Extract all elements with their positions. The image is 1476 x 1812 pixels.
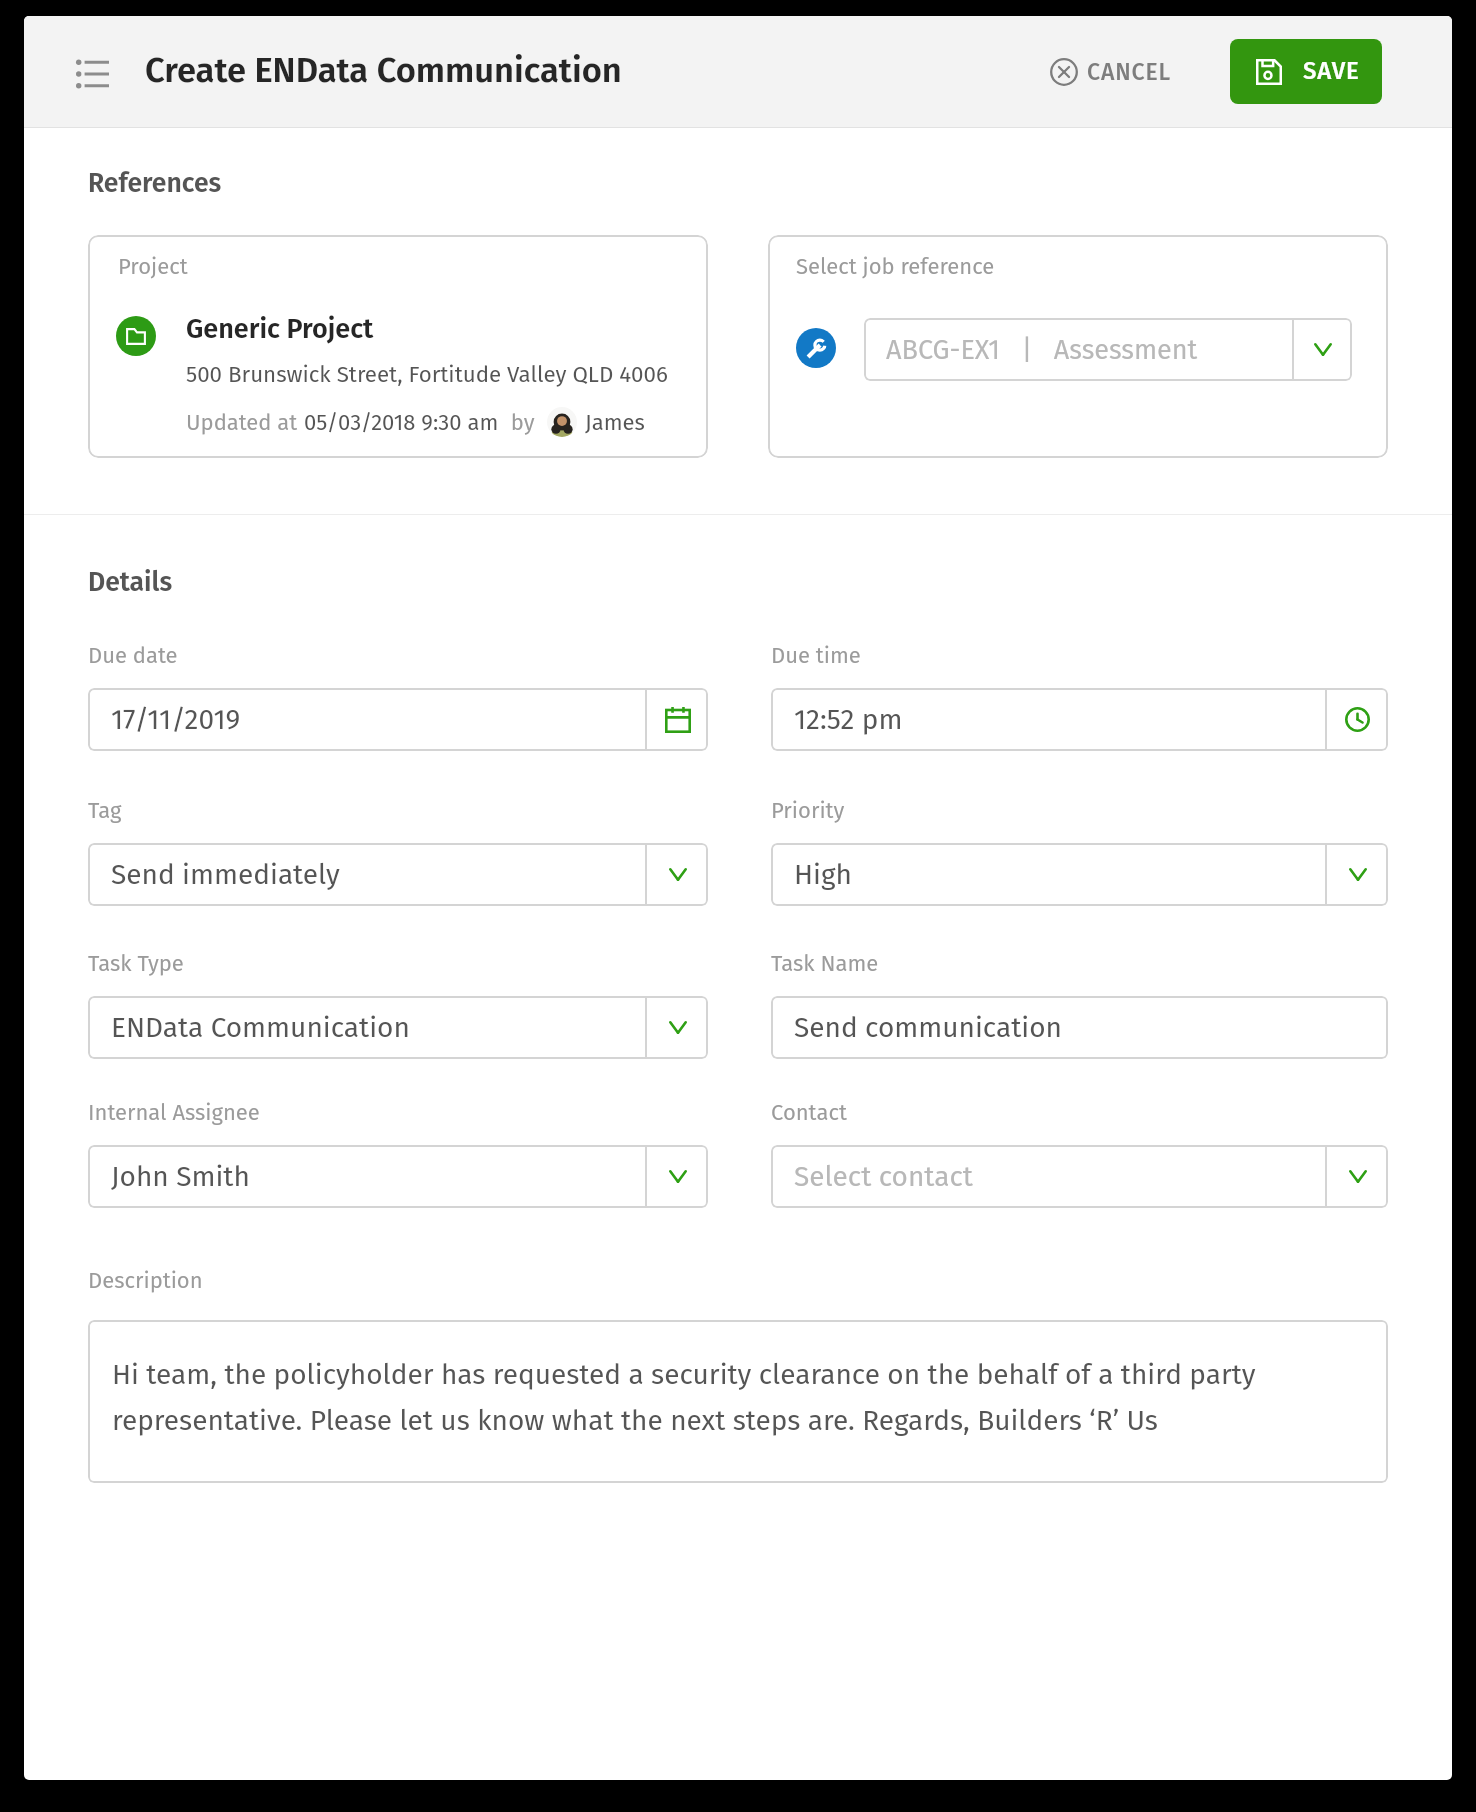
staticText: Hi team, the policyholder has requested … bbox=[112, 1358, 1364, 1437]
button[interactable]: Select job reference bbox=[768, 235, 1388, 458]
staticText: ENData Communication bbox=[111, 1011, 410, 1045]
staticText: Generic Project bbox=[186, 313, 374, 345]
staticText: Project bbox=[118, 253, 188, 279]
staticText: ABCG-EX1 | Assessment bbox=[886, 334, 1198, 366]
button[interactable]: Send immediately bbox=[88, 843, 708, 906]
staticText: Select job reference bbox=[796, 253, 995, 279]
staticText: 05/03/2018 9:30 am bbox=[304, 409, 499, 435]
staticText: Due date bbox=[88, 642, 178, 668]
staticText: Send communication bbox=[794, 1011, 1062, 1045]
button[interactable]: High bbox=[771, 843, 1388, 906]
staticText: Task Name bbox=[771, 950, 879, 976]
staticText: Priority bbox=[771, 797, 845, 823]
staticText: Send immediately bbox=[111, 858, 340, 892]
staticText: Task Type bbox=[88, 950, 184, 976]
button[interactable]: Send communication bbox=[771, 996, 1388, 1059]
staticText: High bbox=[794, 858, 852, 892]
staticText: 17/11/2019 bbox=[111, 703, 241, 737]
button[interactable]: SAVE bbox=[1230, 39, 1382, 104]
button[interactable]: Menu bbox=[64, 46, 120, 102]
staticText: Tag bbox=[88, 797, 122, 823]
staticText: John Smith bbox=[111, 1160, 250, 1194]
staticText: 12:52 pm bbox=[794, 703, 903, 737]
staticText: SAVE bbox=[1303, 57, 1360, 86]
staticText: Contact bbox=[771, 1099, 847, 1125]
staticText: by bbox=[499, 409, 547, 435]
button[interactable]: ENData Communication bbox=[88, 996, 708, 1059]
staticText: Due time bbox=[771, 642, 861, 668]
staticText: Internal Assignee bbox=[88, 1099, 260, 1125]
button[interactable]: ABCG-EX1 | Assessment bbox=[864, 318, 1352, 381]
staticText: 500 Brunswick Street, Fortitude Valley Q… bbox=[186, 361, 668, 388]
button[interactable]: Select contact bbox=[771, 1145, 1388, 1208]
button[interactable]: Hi team, the policyholder has requested … bbox=[88, 1320, 1388, 1483]
staticText: Details bbox=[88, 566, 173, 598]
staticText: Updated at bbox=[186, 409, 304, 435]
staticText: CANCEL bbox=[1087, 58, 1171, 86]
staticText: Description bbox=[88, 1267, 203, 1293]
button[interactable]: 17/11/2019 bbox=[88, 688, 708, 751]
staticText: James bbox=[585, 409, 645, 435]
button[interactable]: 12:52 pm bbox=[771, 688, 1388, 751]
staticText: Select contact bbox=[794, 1160, 973, 1194]
staticText: Create ENData Communication bbox=[145, 50, 622, 91]
button[interactable]: Project bbox=[88, 235, 708, 458]
button[interactable]: John Smith bbox=[88, 1145, 708, 1208]
staticText: References bbox=[88, 167, 222, 199]
button[interactable]: CANCEL bbox=[1038, 45, 1183, 99]
